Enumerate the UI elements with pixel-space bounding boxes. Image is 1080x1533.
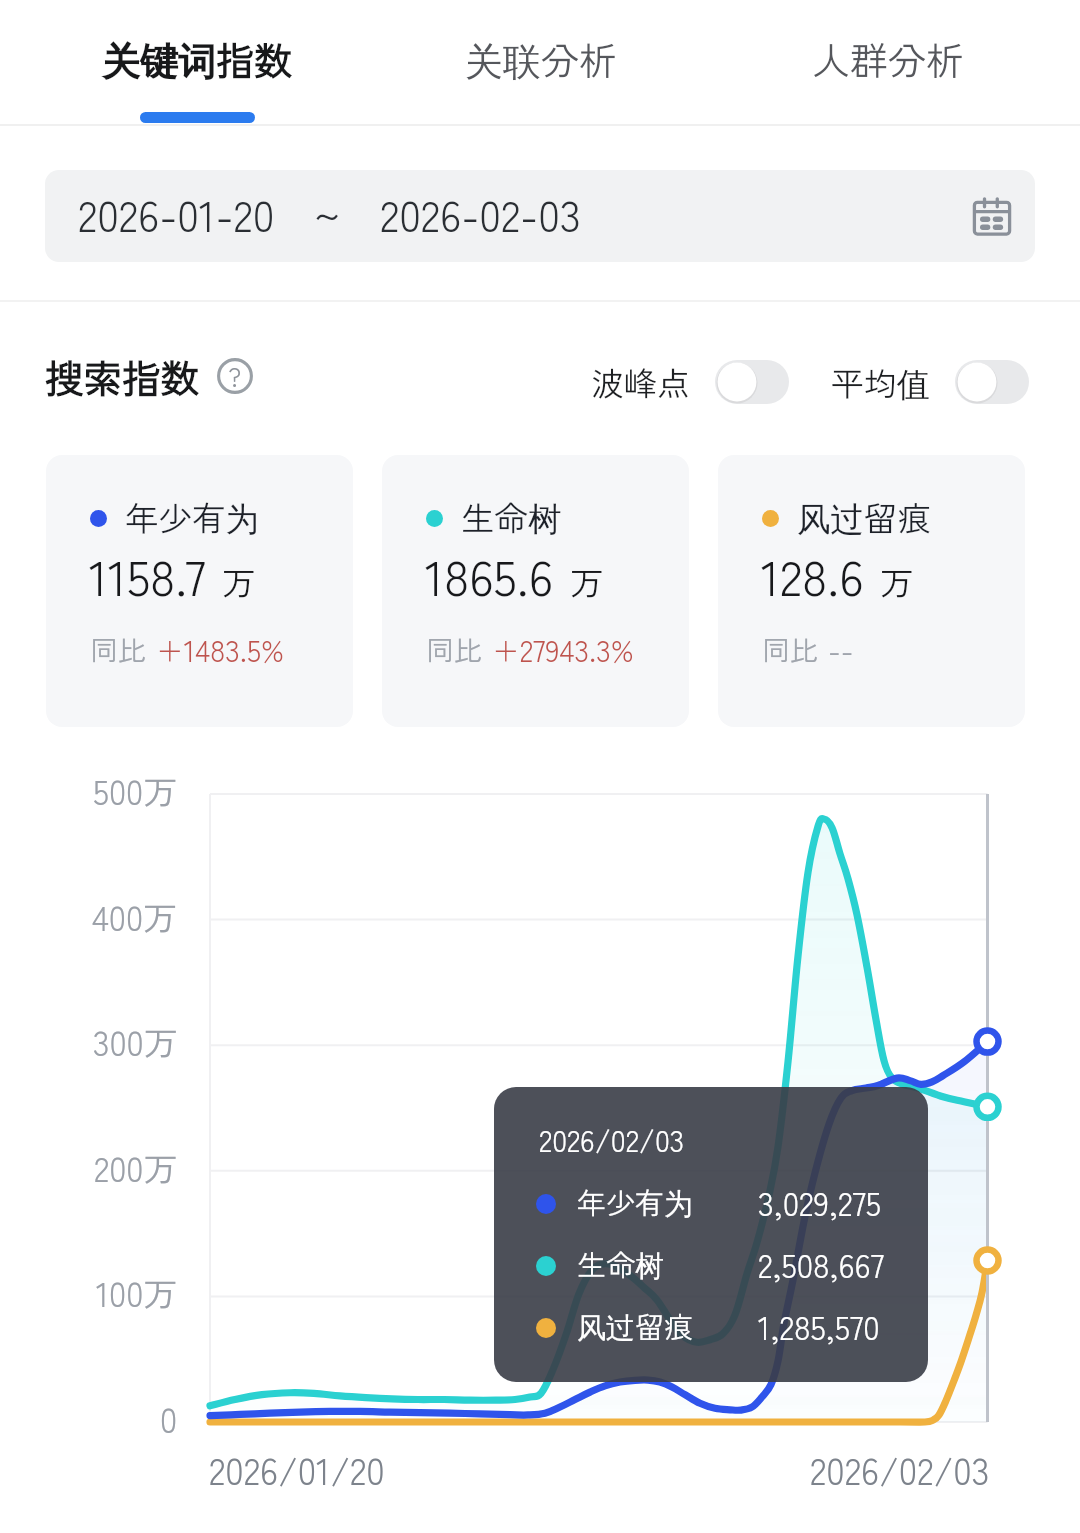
staticText: 生命树	[577, 1242, 665, 1284]
button[interactable]: 关联分析	[381, 0, 701, 124]
staticText: 万	[570, 557, 604, 606]
staticText: +27943.3%	[492, 627, 634, 670]
staticText: 1,285,570	[758, 1302, 880, 1348]
staticText: 风过留痕	[797, 492, 931, 541]
staticText: 1865.6	[425, 539, 554, 611]
button[interactable]: 2026-01-20	[45, 170, 1035, 262]
button[interactable]: 搜索指数	[45, 348, 253, 404]
staticText: --	[828, 627, 854, 670]
staticText: 2,508,667	[758, 1240, 885, 1286]
staticText: 2026-02-03	[380, 182, 581, 244]
staticText: 万	[222, 557, 256, 606]
other: 帮助说明	[217, 358, 253, 394]
staticText: 生命树	[461, 492, 562, 541]
button[interactable]: 生命树	[382, 455, 689, 727]
staticText: 2026/01/20	[209, 1443, 385, 1496]
staticText: 关联分析	[465, 31, 618, 86]
staticText: +1483.5%	[156, 627, 285, 670]
staticText: 同比	[426, 629, 483, 670]
button[interactable]: 波峰点	[591, 358, 789, 406]
staticText: 200万	[94, 1143, 178, 1192]
staticText: 2026/02/03	[539, 1118, 685, 1161]
staticText: 同比	[90, 629, 147, 670]
staticText: 万	[880, 557, 914, 606]
button[interactable]: 关键词指数	[37, 0, 357, 124]
staticText: 年少有为	[125, 492, 259, 541]
staticText: 3,029,275	[758, 1178, 882, 1224]
button[interactable]: 年少有为	[46, 455, 353, 727]
staticText: 1158.7	[89, 539, 206, 611]
staticText: 128.6	[761, 539, 864, 611]
staticText: 400万	[92, 892, 178, 941]
staticText: 关键词指数	[102, 31, 293, 86]
button[interactable]: 风过留痕	[718, 455, 1025, 727]
staticText: 0	[160, 1394, 178, 1443]
other: 选择日期	[970, 194, 1014, 238]
staticText: 年少有为	[577, 1180, 694, 1222]
staticText: 人群分析	[812, 31, 965, 86]
staticText: 波峰点	[591, 358, 690, 406]
staticText: 搜索指数	[45, 348, 200, 404]
button[interactable]: 人群分析	[728, 0, 1048, 124]
staticText: ~	[314, 182, 341, 244]
staticText: 2026/02/03	[810, 1443, 990, 1496]
staticText: 2026-01-20	[78, 182, 275, 244]
staticText: 平均值	[831, 358, 930, 406]
staticText: 同比	[762, 629, 819, 670]
staticText: ?	[228, 357, 242, 393]
staticText: 风过留痕	[577, 1304, 694, 1346]
staticText: 500万	[93, 766, 178, 815]
staticText: 100万	[96, 1268, 178, 1317]
button[interactable]: 平均值	[831, 358, 1029, 406]
staticText: 300万	[93, 1017, 178, 1066]
